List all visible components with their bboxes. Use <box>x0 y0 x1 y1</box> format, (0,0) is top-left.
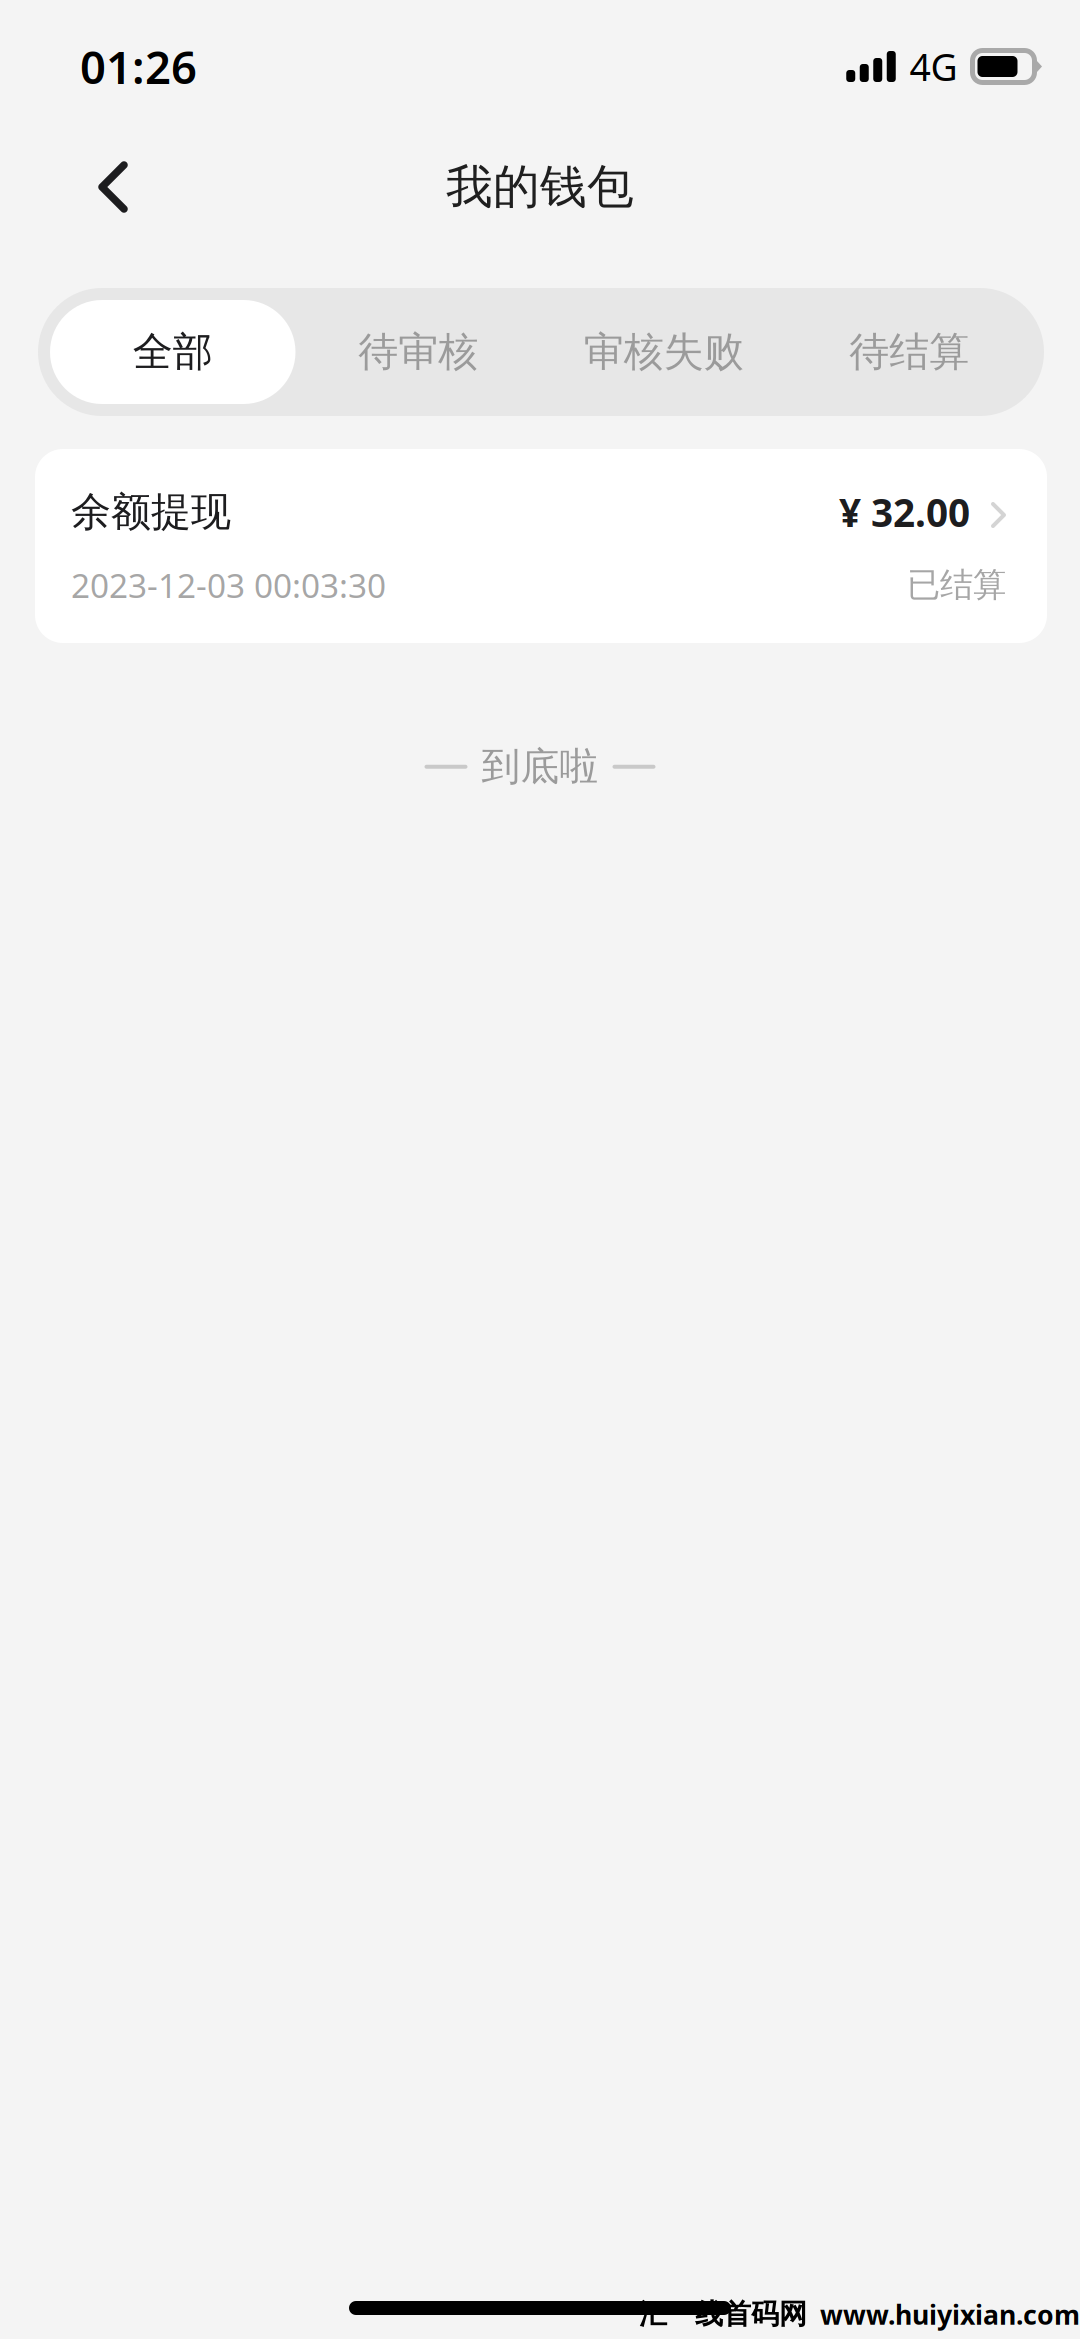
staticText: 余额提现 <box>71 487 231 536</box>
staticText: 到底啦 <box>481 743 598 790</box>
staticText: 01:26 <box>80 36 197 97</box>
staticText: 2023-12-03 00:03:30 <box>71 563 386 607</box>
staticText: 汇一线首码网 <box>639 2297 807 2331</box>
staticText: 待结算 <box>849 327 969 376</box>
button[interactable]: 待审核 <box>295 300 541 404</box>
staticText: www.huiyixian.com <box>820 2297 1080 2332</box>
staticText: ¥ 32.00 <box>839 486 970 538</box>
staticText: 全部 <box>133 327 213 376</box>
button[interactable]: 待结算 <box>786 300 1032 404</box>
button[interactable]: 审核失败 <box>541 300 786 404</box>
staticText: 4G <box>909 42 957 91</box>
staticText: 审核失败 <box>584 327 744 376</box>
button[interactable]: Back <box>0 135 180 239</box>
button[interactable]: 全部 <box>50 300 295 404</box>
button[interactable]: 余额提现 <box>35 449 1047 643</box>
staticText: 已结算 <box>907 564 1006 605</box>
staticText: 我的钱包 <box>446 158 634 216</box>
staticText: 待审核 <box>358 327 478 376</box>
